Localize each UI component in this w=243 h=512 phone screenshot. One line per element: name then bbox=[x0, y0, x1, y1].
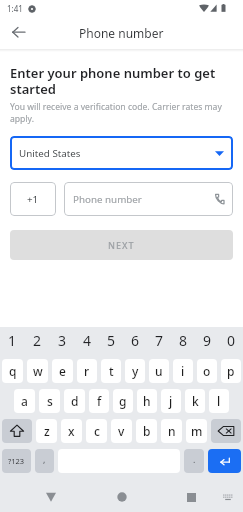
staticText: q bbox=[9, 363, 17, 379]
button[interactable]: Home bbox=[108, 483, 136, 511]
button[interactable]: r bbox=[77, 359, 97, 383]
staticText: s bbox=[47, 393, 53, 409]
staticText: 3 bbox=[58, 331, 67, 350]
button[interactable]: 9 bbox=[195, 327, 219, 359]
button[interactable]: d bbox=[64, 389, 85, 413]
staticText: . bbox=[193, 453, 196, 465]
staticText: t bbox=[109, 363, 114, 379]
button[interactable]: 5 bbox=[99, 327, 123, 359]
button[interactable]: f bbox=[89, 389, 109, 413]
button[interactable]: j bbox=[161, 389, 181, 413]
staticText: n bbox=[168, 423, 176, 439]
button[interactable]: h bbox=[137, 389, 157, 413]
button[interactable]: u bbox=[149, 359, 169, 383]
button[interactable]: c bbox=[86, 419, 107, 443]
button[interactable]: 6 bbox=[123, 327, 147, 359]
staticText: 1 bbox=[8, 331, 17, 350]
staticText: u bbox=[155, 363, 163, 379]
staticText: , bbox=[43, 453, 46, 465]
staticText: o bbox=[203, 363, 211, 379]
staticText: 2 bbox=[33, 331, 42, 350]
staticText: You will receive a verification code. Ca… bbox=[10, 101, 233, 125]
button[interactable]: Back bbox=[6, 21, 30, 45]
button[interactable]: Recents bbox=[177, 483, 205, 511]
staticText: Enter your phone number to get started bbox=[10, 64, 233, 97]
button[interactable]: i bbox=[173, 359, 193, 383]
button[interactable]: v bbox=[111, 419, 132, 443]
button[interactable]: o bbox=[197, 359, 217, 383]
staticText: 0 bbox=[227, 331, 236, 350]
button[interactable]: p bbox=[221, 359, 241, 383]
staticText: h bbox=[143, 393, 151, 409]
button[interactable]: a bbox=[14, 389, 35, 413]
staticText: p bbox=[227, 363, 235, 379]
staticText: j bbox=[169, 393, 173, 409]
staticText: x bbox=[68, 423, 75, 439]
staticText: Phone number bbox=[73, 193, 142, 206]
button[interactable]: 2 bbox=[25, 327, 50, 359]
staticText: 7 bbox=[155, 331, 164, 350]
staticText: b bbox=[143, 423, 151, 439]
button[interactable]: Switch keyboard bbox=[220, 489, 236, 505]
staticText: f bbox=[97, 393, 102, 409]
button[interactable]: +1 bbox=[10, 182, 56, 216]
staticText: Phone number bbox=[79, 25, 164, 41]
button[interactable]: 3 bbox=[50, 327, 75, 359]
button[interactable]: z bbox=[36, 419, 57, 443]
button[interactable]: . bbox=[184, 449, 204, 473]
button[interactable]: Enter bbox=[208, 449, 241, 473]
button[interactable]: 0 bbox=[219, 327, 243, 359]
staticText: w bbox=[33, 363, 43, 379]
staticText: ?123 bbox=[8, 456, 25, 466]
staticText: e bbox=[59, 363, 66, 379]
staticText: k bbox=[192, 393, 199, 409]
staticText: a bbox=[21, 393, 28, 409]
button[interactable]: United States bbox=[10, 136, 233, 170]
staticText: v bbox=[118, 423, 125, 439]
staticText: 9 bbox=[203, 331, 212, 350]
staticText: y bbox=[132, 363, 139, 379]
button[interactable]: NEXT bbox=[10, 230, 233, 260]
staticText: 8 bbox=[179, 331, 188, 350]
staticText: NEXT bbox=[108, 239, 135, 251]
button[interactable]: g bbox=[113, 389, 133, 413]
button[interactable]: Shift bbox=[2, 419, 32, 443]
button[interactable]: b bbox=[136, 419, 157, 443]
button[interactable]: t bbox=[101, 359, 121, 383]
staticText: +1 bbox=[27, 193, 39, 206]
button[interactable]: Phone number bbox=[64, 182, 233, 216]
staticText: 6 bbox=[131, 331, 140, 350]
staticText: r bbox=[84, 363, 90, 379]
staticText: c bbox=[94, 423, 100, 439]
button[interactable]: x bbox=[61, 419, 82, 443]
button[interactable]: 7 bbox=[147, 327, 171, 359]
button[interactable]: k bbox=[185, 389, 205, 413]
button[interactable]: ?123 bbox=[2, 449, 31, 473]
staticText: l bbox=[217, 393, 221, 409]
staticText: m bbox=[191, 423, 203, 439]
button[interactable]: 8 bbox=[171, 327, 195, 359]
button[interactable]: , bbox=[35, 449, 54, 473]
staticText: z bbox=[44, 423, 50, 439]
button[interactable]: q bbox=[2, 359, 23, 383]
button[interactable]: l bbox=[209, 389, 229, 413]
button[interactable]: e bbox=[52, 359, 73, 383]
staticText: 1:41 bbox=[7, 3, 23, 14]
staticText: 5 bbox=[107, 331, 116, 350]
button[interactable]: 4 bbox=[75, 327, 99, 359]
staticText: g bbox=[119, 393, 127, 409]
button[interactable]: s bbox=[39, 389, 60, 413]
button[interactable]: Backspace bbox=[211, 419, 241, 443]
button[interactable]: y bbox=[125, 359, 145, 383]
staticText: i bbox=[181, 363, 185, 379]
staticText: d bbox=[71, 393, 79, 409]
button[interactable]: w bbox=[27, 359, 48, 383]
staticText: 4 bbox=[83, 331, 92, 350]
button[interactable]: m bbox=[186, 419, 207, 443]
staticText: United States bbox=[19, 147, 81, 160]
button[interactable]: Back bbox=[37, 483, 65, 511]
button[interactable]: n bbox=[161, 419, 182, 443]
button[interactable]: 1 bbox=[0, 327, 25, 359]
